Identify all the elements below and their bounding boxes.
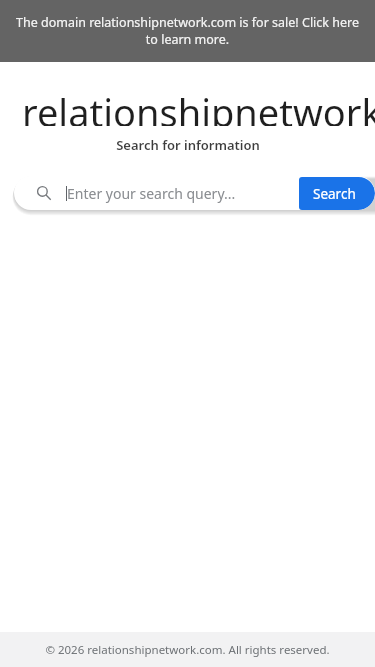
staticText: Search (313, 185, 356, 203)
staticText: Enter your search query... (67, 184, 236, 203)
staticText: The domain relationshipnetwork.com is fo… (14, 14, 361, 48)
staticText: relationshipnetwork.com (22, 86, 375, 126)
button[interactable]: Search (299, 177, 375, 210)
button[interactable]: Search (14, 176, 299, 210)
button[interactable]: The domain relationshipnetwork.com is fo… (0, 0, 375, 62)
staticText: Search for information (116, 136, 260, 154)
other: Search (36, 185, 52, 201)
staticText: © 2026 relationshipnetwork.com. All righ… (45, 642, 330, 658)
